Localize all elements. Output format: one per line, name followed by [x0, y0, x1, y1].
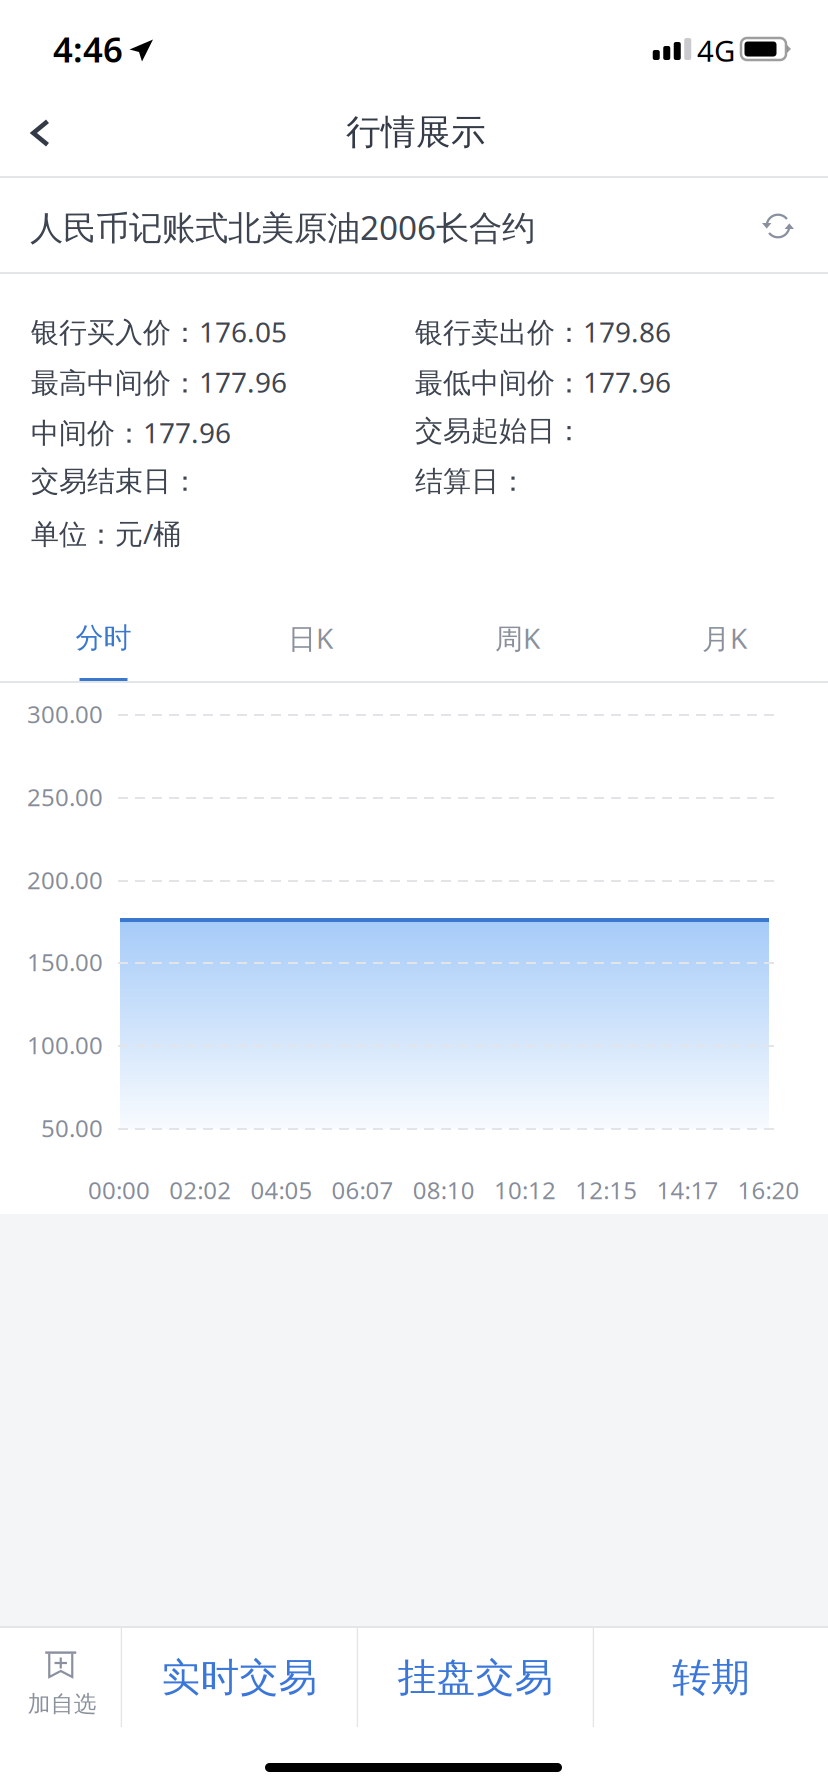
button[interactable]: 周K: [414, 593, 621, 681]
staticText: 周K: [495, 619, 540, 657]
button[interactable]: 加自选: [0, 1628, 121, 1727]
staticText: 12:15: [575, 1174, 637, 1206]
staticText: 挂盘交易: [397, 1654, 553, 1701]
staticText: 银行卖出价：179.86: [415, 313, 671, 350]
staticText: 14:17: [656, 1174, 718, 1206]
staticText: 10:12: [494, 1174, 556, 1206]
staticText: 04:05: [250, 1174, 312, 1206]
staticText: 银行买入价：176.05: [31, 313, 287, 350]
staticText: 实时交易: [161, 1654, 317, 1701]
staticText: 结算日：: [415, 464, 527, 499]
staticText: 150.00: [27, 946, 103, 978]
staticText: 日K: [288, 619, 333, 657]
staticText: 02:02: [169, 1174, 231, 1206]
staticText: 4:46: [53, 26, 123, 72]
staticText: 月K: [702, 619, 747, 657]
staticText: 00:00: [88, 1174, 150, 1206]
staticText: 人民币记账式北美原油2006长合约: [30, 205, 535, 249]
staticText: 06:07: [332, 1174, 394, 1206]
staticText: 交易结束日：: [31, 464, 199, 499]
staticText: 中间价：177.96: [31, 414, 231, 451]
staticText: 300.00: [27, 698, 103, 730]
button[interactable]: Back: [0, 88, 88, 176]
staticText: 100.00: [27, 1029, 103, 1061]
staticText: 50.00: [41, 1112, 103, 1144]
staticText: 分时: [75, 621, 131, 655]
staticText: 250.00: [27, 781, 103, 813]
staticText: 交易起始日：: [415, 414, 583, 448]
button[interactable]: 实时交易: [122, 1628, 357, 1727]
button[interactable]: Refresh: [738, 192, 818, 260]
staticText: 单位：元/桶: [31, 515, 181, 552]
button[interactable]: 转期: [594, 1628, 828, 1727]
staticText: 最低中间价：177.96: [415, 363, 671, 401]
staticText: 16:20: [738, 1174, 800, 1206]
staticText: 最高中间价：177.96: [31, 363, 287, 401]
button[interactable]: 分时: [0, 593, 207, 681]
staticText: 08:10: [413, 1174, 475, 1206]
staticText: 200.00: [27, 864, 103, 896]
staticText: 4G: [697, 31, 735, 70]
staticText: 加自选: [28, 1690, 97, 1718]
staticText: 行情展示: [346, 111, 486, 154]
staticText: 转期: [672, 1654, 750, 1701]
button[interactable]: 日K: [207, 593, 414, 681]
button[interactable]: 挂盘交易: [358, 1628, 593, 1727]
button[interactable]: 月K: [621, 593, 828, 681]
